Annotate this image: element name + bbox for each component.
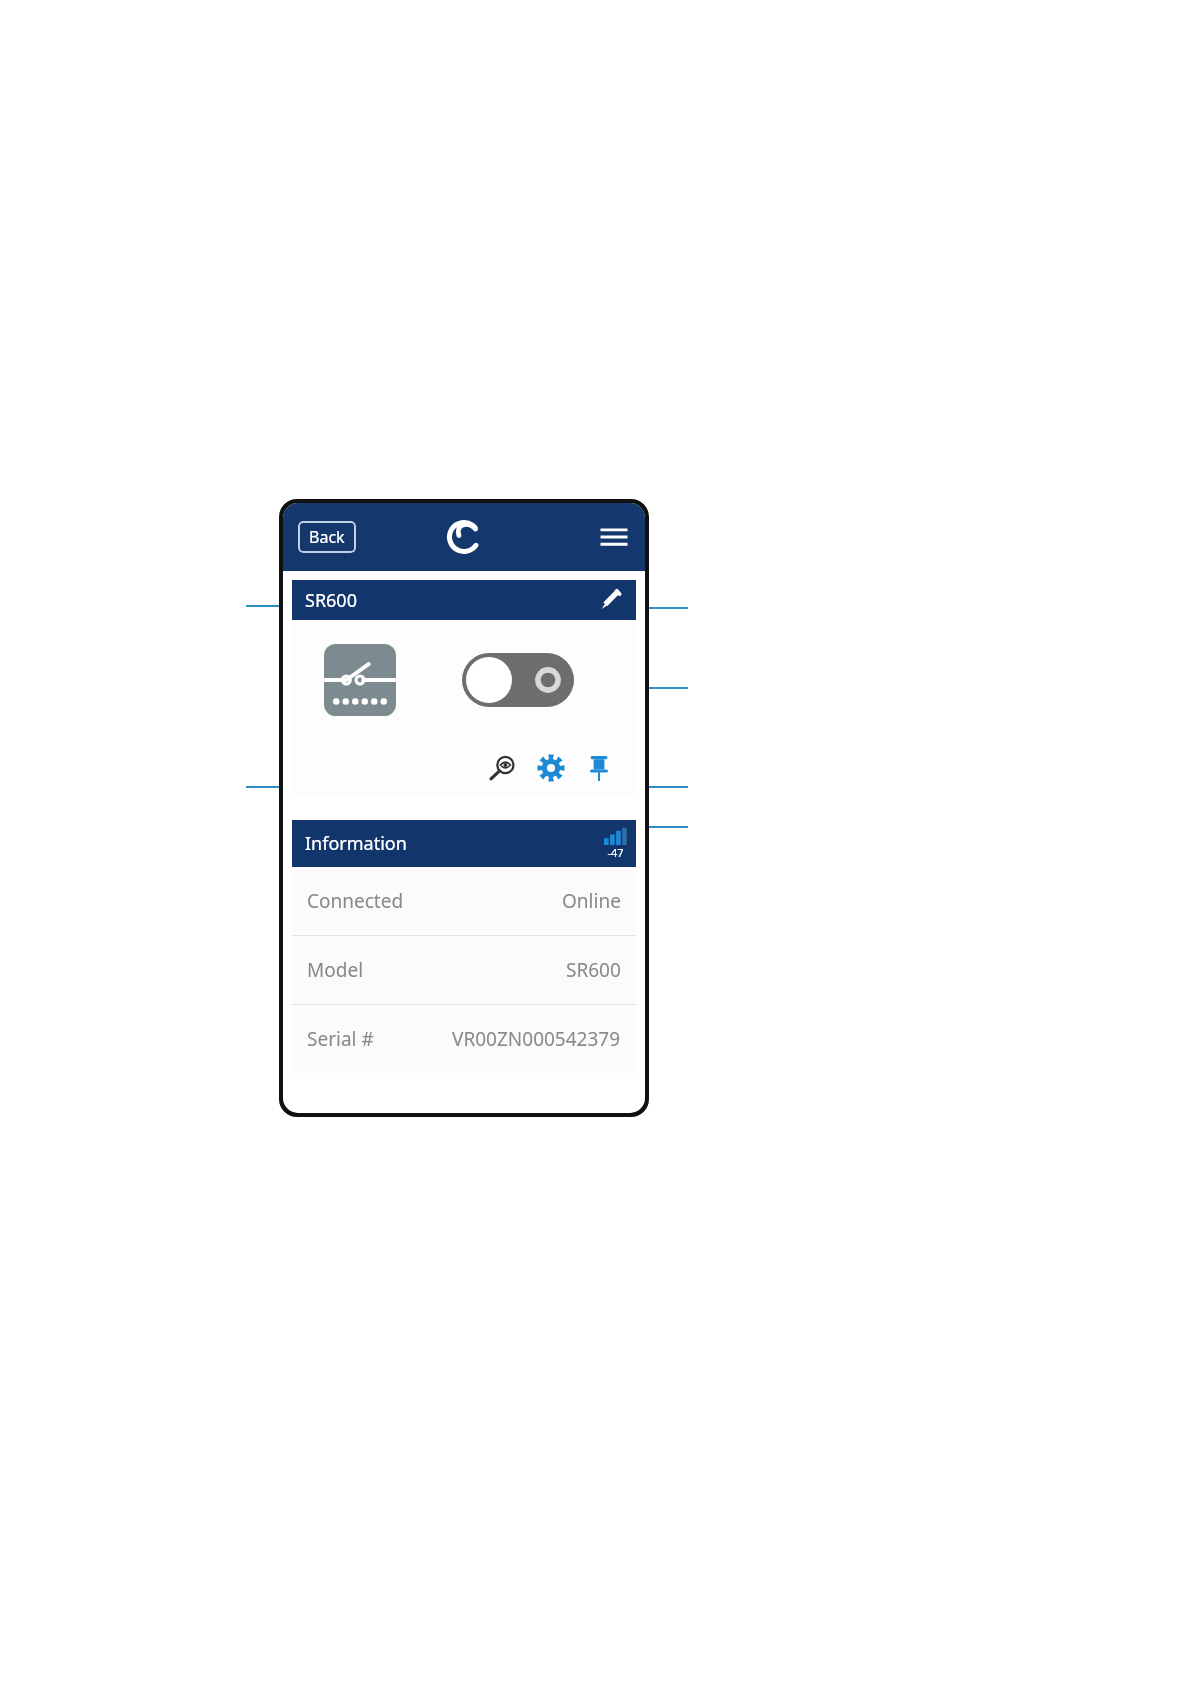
button[interactable]: Identify: [488, 753, 518, 783]
staticText: Model: [307, 957, 364, 983]
button[interactable]: Model: [292, 936, 636, 1004]
button[interactable]: Serial #: [292, 1005, 636, 1073]
staticText: Online: [562, 888, 621, 914]
staticText: Connected: [307, 888, 404, 914]
staticText: Serial #: [307, 1026, 374, 1052]
staticText: SR600: [566, 957, 621, 983]
button[interactable]: Connected: [292, 867, 636, 935]
button[interactable]: Power toggle: [462, 653, 574, 707]
button[interactable]: SR600: [292, 580, 636, 620]
button[interactable]: Settings: [536, 753, 566, 783]
staticText: Information: [305, 831, 407, 856]
staticText: Back: [309, 526, 345, 548]
button[interactable]: Menu: [599, 522, 629, 552]
staticText: VR00ZN000542379: [452, 1026, 621, 1052]
button[interactable]: Back: [298, 521, 356, 553]
button[interactable]: Edit name: [598, 588, 622, 612]
staticText: -47: [607, 845, 624, 860]
button[interactable]: Pin: [584, 753, 614, 783]
other: Signal strength: [604, 828, 626, 845]
staticText: SR600: [305, 588, 357, 613]
other: Logo: [442, 515, 486, 559]
